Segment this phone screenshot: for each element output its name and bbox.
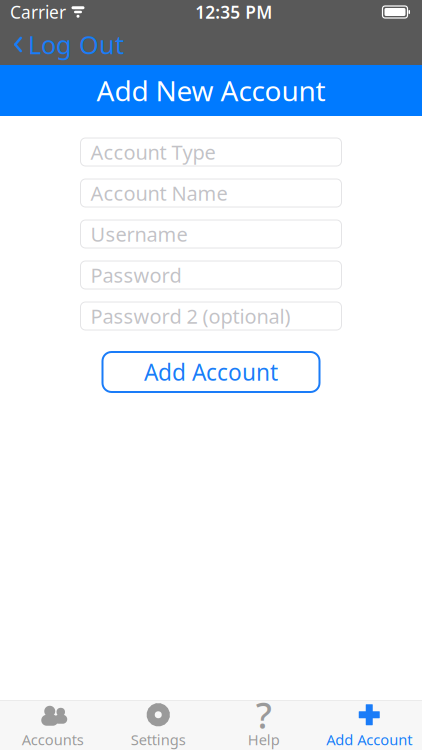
- staticText: Add Account: [144, 357, 278, 387]
- staticText: Accounts: [22, 730, 84, 749]
- button[interactable]: Add Account: [102, 352, 319, 392]
- button[interactable]: Log Out: [0, 22, 124, 67]
- button[interactable]: Settings: [105, 701, 211, 750]
- staticText: Password: [90, 262, 181, 288]
- staticText: Add New Account: [96, 72, 325, 109]
- staticText: Account Type: [90, 139, 215, 165]
- staticText: Password 2 (optional): [90, 303, 290, 329]
- staticText: Username: [90, 221, 187, 247]
- staticText: Help: [248, 730, 280, 749]
- staticText: 12:35 PM: [195, 0, 272, 23]
- button[interactable]: ?: [211, 701, 316, 750]
- button[interactable]: Add Account: [316, 701, 422, 750]
- button[interactable]: Accounts: [0, 701, 105, 750]
- staticText: Settings: [131, 730, 186, 749]
- staticText: ?: [256, 691, 272, 739]
- staticText: Add Account: [326, 730, 412, 749]
- staticText: Account Name: [90, 180, 227, 206]
- staticText: Carrier: [10, 0, 66, 23]
- staticText: Log Out: [28, 28, 124, 61]
